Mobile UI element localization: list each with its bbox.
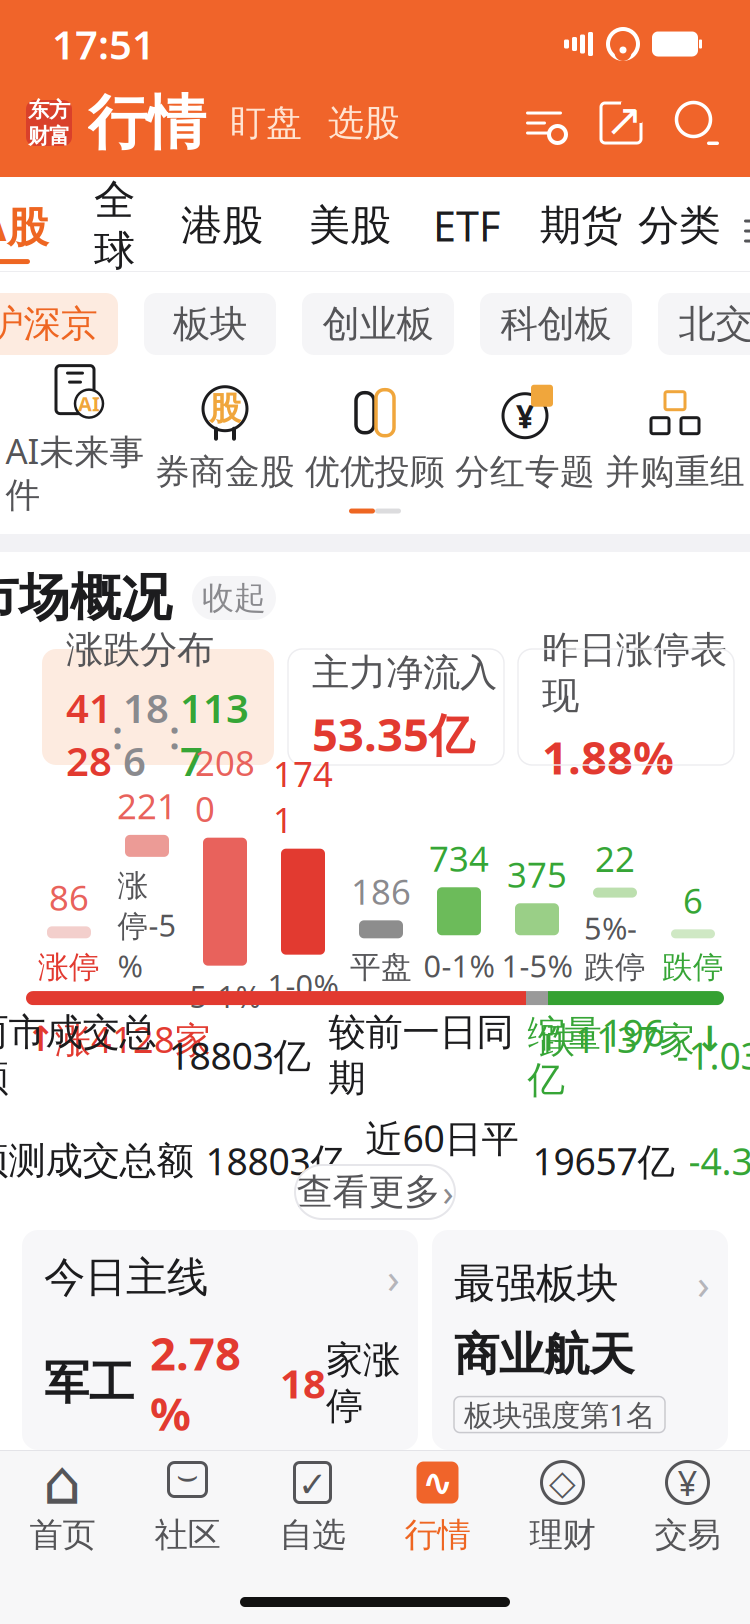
- button[interactable]: 港股: [181, 200, 263, 262]
- staticText: 创元科技: [454, 1456, 574, 1554]
- button[interactable]: 主力净流入: [288, 649, 504, 765]
- staticText: 期货: [540, 200, 622, 251]
- staticText: 科创板: [500, 301, 611, 347]
- staticText: 1137: [180, 681, 249, 787]
- staticText: 股: [209, 389, 241, 428]
- staticText: 涨停: [38, 948, 100, 986]
- staticText: ↑: [26, 1019, 55, 1059]
- staticText: 预测成交总额: [0, 1138, 193, 1184]
- staticText: 沪深京: [0, 301, 97, 347]
- staticText: AI未来事件: [5, 428, 144, 516]
- staticText: ETF: [433, 198, 500, 253]
- button[interactable]: 行情: [88, 87, 206, 159]
- staticText: 北交所: [678, 301, 750, 347]
- staticText: 板块强度第1名: [464, 1395, 655, 1434]
- staticText: ✓: [298, 1465, 327, 1504]
- staticText: A股: [0, 198, 48, 253]
- staticText: 4128: [66, 681, 112, 787]
- staticText: 跌停: [662, 948, 724, 986]
- button[interactable]: 盯盘: [230, 101, 302, 145]
- staticText: 最强板块: [454, 1258, 618, 1309]
- staticText: ⌂: [43, 1448, 82, 1517]
- button[interactable]: ETF: [433, 198, 500, 264]
- staticText: 10.01%: [231, 1461, 311, 1567]
- staticText: 优优投顾: [305, 451, 445, 493]
- button[interactable]: ¥: [450, 385, 600, 493]
- staticText: ∿: [422, 1461, 453, 1504]
- staticText: ›: [387, 1250, 400, 1305]
- staticText: ›: [442, 1168, 453, 1216]
- button[interactable]: ✓: [250, 1451, 375, 1563]
- staticText: 缩量196亿: [527, 1008, 664, 1103]
- staticText: 1.88%: [542, 727, 674, 787]
- staticText: 东方: [28, 97, 70, 123]
- staticText: 券商金股: [155, 451, 295, 493]
- button[interactable]: 全球: [94, 175, 135, 287]
- button[interactable]: ¥: [625, 1451, 750, 1563]
- button[interactable]: 美股: [309, 200, 391, 262]
- staticText: 财富: [28, 123, 70, 149]
- staticText: 1-0%: [267, 965, 338, 1005]
- staticText: 分类: [638, 200, 720, 251]
- button[interactable]: 沪深京: [0, 293, 118, 355]
- button[interactable]: 更多分类: [742, 211, 750, 251]
- button[interactable]: ◇: [500, 1451, 625, 1563]
- button[interactable]: 科创板: [480, 293, 632, 355]
- button[interactable]: 股: [150, 385, 300, 493]
- button[interactable]: 北交所: [658, 293, 750, 355]
- button[interactable]: 选股: [328, 101, 400, 145]
- button[interactable]: 今日主线: [22, 1230, 418, 1450]
- button[interactable]: 分类: [638, 200, 720, 262]
- staticText: 221: [117, 783, 177, 829]
- staticText: 主力净流入: [312, 650, 497, 696]
- staticText: 6: [683, 877, 703, 923]
- staticText: 商业航天: [454, 1327, 634, 1383]
- staticText: 涨跌分布: [66, 627, 214, 673]
- button[interactable]: ⌂: [0, 1451, 125, 1563]
- button[interactable]: 分享: [598, 100, 644, 146]
- staticText: 板块: [173, 301, 247, 347]
- staticText: 今日主线: [44, 1252, 208, 1303]
- staticText: 创业板: [322, 301, 433, 347]
- button[interactable]: 涨跌分布: [42, 649, 274, 765]
- staticText: 昨日涨停表现: [542, 627, 727, 719]
- button[interactable]: 搜索: [674, 100, 720, 146]
- button[interactable]: 昨日涨停表现: [518, 649, 734, 765]
- staticText: 19657亿: [532, 1136, 674, 1185]
- staticText: 18803亿: [205, 1136, 347, 1185]
- button[interactable]: ⌣: [125, 1451, 250, 1563]
- staticText: ¥: [677, 1459, 697, 1505]
- staticText: ↓: [695, 1019, 724, 1059]
- staticText: 53.35亿: [312, 704, 474, 764]
- button[interactable]: 收起: [192, 576, 276, 620]
- button[interactable]: 并购重组: [600, 385, 750, 493]
- staticText: 港股: [181, 200, 263, 251]
- staticText: 0-1%: [423, 945, 494, 986]
- button[interactable]: 板块: [144, 293, 276, 355]
- staticText: 1-5%: [501, 945, 572, 986]
- button[interactable]: 最强板块: [432, 1230, 728, 1450]
- button[interactable]: 查看更多: [295, 1165, 455, 1219]
- staticText: 5%-跌停: [584, 908, 646, 986]
- staticText: 行情: [88, 87, 206, 159]
- button[interactable]: 盯盘设置: [522, 103, 566, 143]
- staticText: ¥: [516, 394, 534, 437]
- staticText: 首页: [29, 1514, 95, 1555]
- button[interactable]: AI: [0, 362, 150, 516]
- staticText: 375: [507, 851, 567, 897]
- button[interactable]: 优优投顾: [300, 385, 450, 493]
- staticText: ⌣: [176, 1460, 199, 1493]
- button[interactable]: A股: [0, 198, 48, 264]
- staticText: -1.03%: [676, 1030, 750, 1080]
- staticText: 5-1%: [189, 976, 260, 1016]
- staticText: :: [169, 707, 180, 760]
- button[interactable]: 创业板: [302, 293, 454, 355]
- button[interactable]: 期货: [540, 200, 622, 262]
- staticText: 6.43%: [231, 1581, 311, 1624]
- button[interactable]: ∿: [375, 1451, 500, 1563]
- staticText: 军工: [44, 1355, 134, 1411]
- staticText: ◇: [549, 1463, 576, 1502]
